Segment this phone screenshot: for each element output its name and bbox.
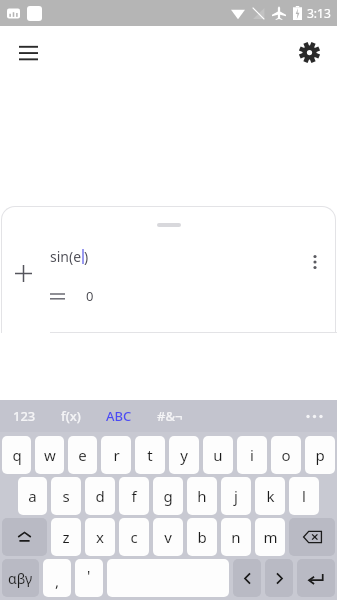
button[interactable]: y — [169, 436, 199, 474]
button[interactable]: f — [119, 477, 149, 515]
staticText: z — [62, 527, 70, 547]
staticText: j — [234, 486, 238, 506]
staticText: n — [231, 527, 241, 547]
staticText: ' — [87, 565, 91, 585]
staticText: , — [55, 571, 60, 591]
button[interactable]: j — [221, 477, 251, 515]
button[interactable]: f(x) — [59, 403, 83, 429]
button[interactable]: More keyboard options — [299, 401, 329, 431]
button[interactable]: r — [101, 436, 131, 474]
staticText: g — [163, 486, 173, 506]
button[interactable]: Move cursor right — [265, 559, 293, 597]
staticText: l — [302, 486, 306, 506]
staticText: w — [44, 445, 56, 465]
staticText: t — [147, 445, 153, 465]
staticText: o — [281, 445, 291, 465]
button[interactable]: αβγ — [2, 559, 39, 597]
staticText: ABC — [106, 407, 132, 425]
button[interactable]: x — [85, 518, 115, 556]
staticText: f — [131, 486, 137, 506]
button[interactable]: d — [85, 477, 115, 515]
button[interactable]: n — [221, 518, 251, 556]
staticText: i — [250, 445, 254, 465]
staticText: x — [96, 527, 104, 547]
button[interactable]: o — [271, 436, 301, 474]
staticText: d — [95, 486, 105, 506]
button[interactable]: i — [237, 436, 267, 474]
staticText: ) — [84, 247, 89, 266]
button[interactable]: Space — [107, 559, 229, 597]
staticText: s — [62, 486, 70, 506]
staticText: m — [263, 527, 278, 547]
staticText: y — [180, 445, 188, 465]
button[interactable]: #&¬ — [155, 403, 185, 429]
staticText: h — [197, 486, 207, 506]
button[interactable]: 123 — [11, 403, 38, 429]
staticText: q — [12, 445, 22, 465]
button[interactable]: t — [135, 436, 165, 474]
button[interactable]: ' — [75, 559, 103, 597]
staticText: 123 — [13, 407, 36, 425]
staticText: u — [213, 445, 223, 465]
staticText: c — [130, 527, 138, 547]
button[interactable]: Shift — [2, 518, 47, 556]
staticText: sin(e — [50, 247, 82, 266]
button[interactable]: b — [187, 518, 217, 556]
button[interactable]: p — [305, 436, 335, 474]
button[interactable]: More options — [299, 246, 331, 278]
staticText: a — [28, 486, 37, 506]
button[interactable]: , — [43, 559, 71, 597]
staticText: r — [113, 445, 120, 465]
button[interactable]: k — [255, 477, 285, 515]
button[interactable]: h — [187, 477, 217, 515]
button[interactable]: q — [2, 436, 31, 474]
button[interactable]: Settings — [289, 32, 329, 72]
button[interactable]: Backspace — [289, 518, 335, 556]
staticText: αβγ — [8, 569, 33, 588]
button[interactable]: a — [18, 477, 47, 515]
button[interactable]: z — [51, 518, 81, 556]
button[interactable]: Drag handle — [157, 223, 181, 227]
button[interactable]: g — [153, 477, 183, 515]
staticText: p — [315, 445, 325, 465]
button[interactable]: s — [51, 477, 81, 515]
staticText: e — [78, 445, 87, 465]
button[interactable]: Open navigation menu — [8, 32, 48, 72]
staticText: f(x) — [61, 407, 81, 425]
button[interactable]: Add expression — [2, 252, 44, 294]
button[interactable]: Enter — [297, 559, 335, 597]
button[interactable]: ABC — [104, 403, 134, 429]
button[interactable]: c — [119, 518, 149, 556]
button[interactable]: l — [289, 477, 319, 515]
button[interactable]: m — [255, 518, 285, 556]
staticText: v — [164, 527, 172, 547]
staticText: #&¬ — [157, 407, 183, 425]
staticText: 0 — [86, 287, 94, 305]
button[interactable]: u — [203, 436, 233, 474]
staticText: k — [266, 486, 275, 506]
staticText: b — [197, 527, 207, 547]
button[interactable]: v — [153, 518, 183, 556]
button[interactable]: e — [68, 436, 97, 474]
staticText: 3:13 — [307, 5, 331, 21]
button[interactable]: Move cursor left — [233, 559, 261, 597]
button[interactable]: w — [35, 436, 64, 474]
